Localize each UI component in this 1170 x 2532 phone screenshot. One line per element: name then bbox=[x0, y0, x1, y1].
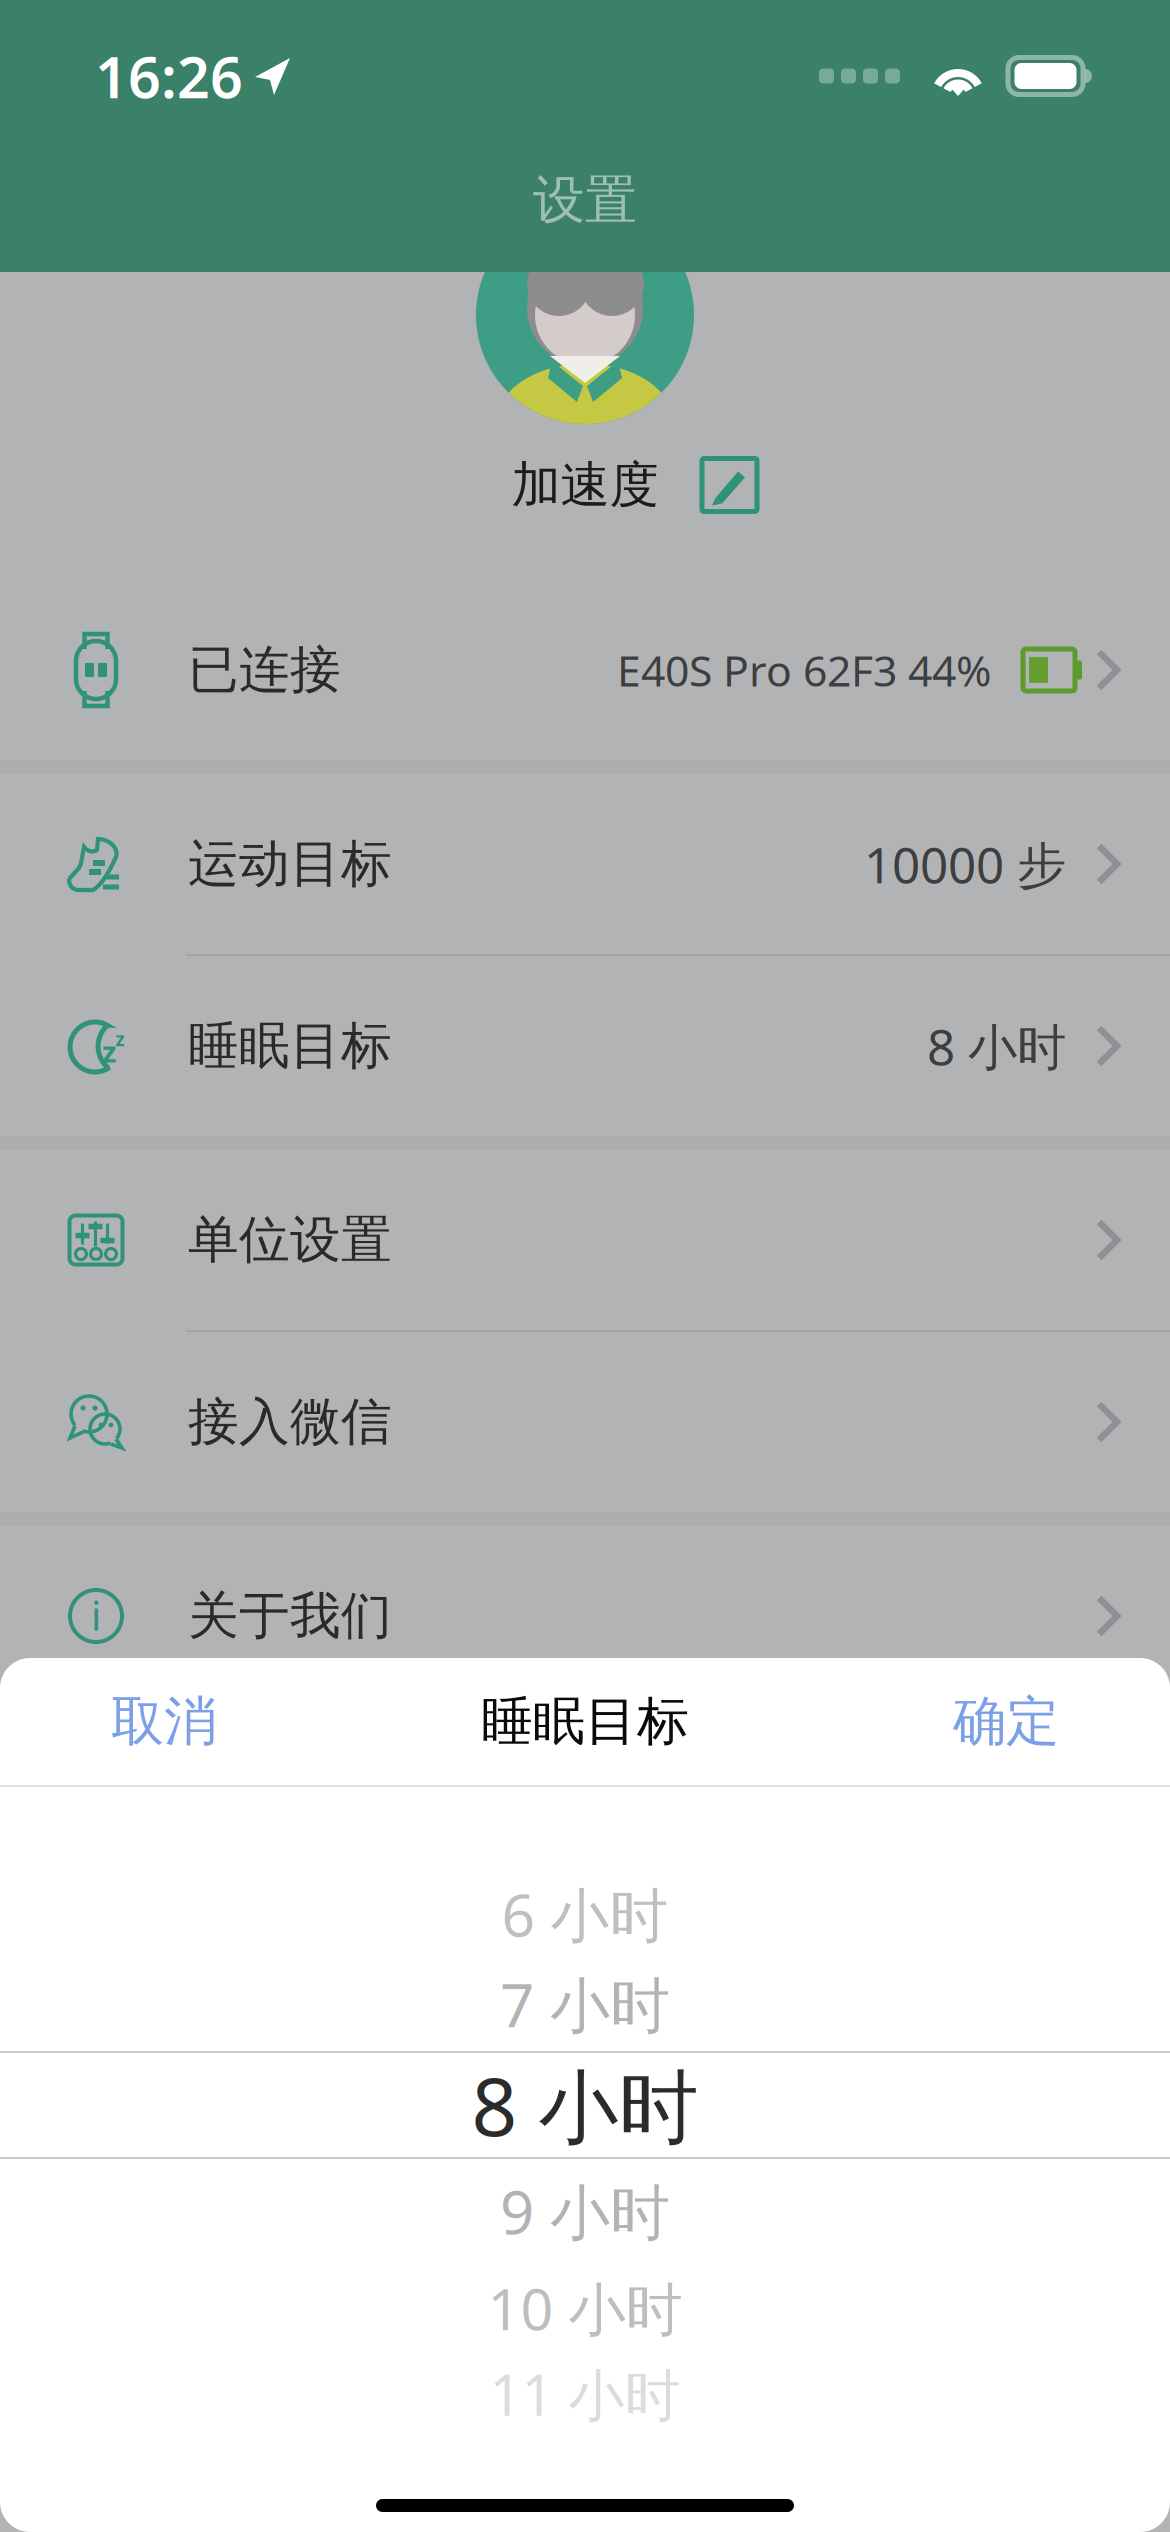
staticText: 已连接 bbox=[188, 639, 341, 701]
staticText: 16:26 bbox=[95, 38, 243, 114]
staticText: 10000 步 bbox=[864, 831, 1066, 897]
staticText: 接入微信 bbox=[188, 1391, 392, 1453]
staticText: 睡眠目标 bbox=[188, 1015, 392, 1077]
staticText: 11 小时 bbox=[489, 2357, 680, 2431]
staticText: 取消 bbox=[111, 1689, 217, 1754]
staticText: 8 小时 bbox=[927, 1013, 1066, 1079]
staticText: 确定 bbox=[953, 1689, 1059, 1754]
staticText: i bbox=[91, 1588, 101, 1641]
button[interactable]: z bbox=[0, 956, 1170, 1136]
button[interactable]: i bbox=[0, 1526, 1170, 1706]
staticText: 关于我们 bbox=[188, 1585, 392, 1647]
staticText: 单位设置 bbox=[188, 1209, 392, 1271]
staticText: 睡眠目标 bbox=[481, 1690, 689, 1753]
button[interactable]: 单位设置 bbox=[0, 1150, 1170, 1330]
button[interactable]: 确定 bbox=[919, 1671, 1093, 1772]
button[interactable]: 取消 bbox=[77, 1671, 251, 1772]
staticText: z bbox=[115, 1027, 124, 1051]
staticText: 运动目标 bbox=[188, 833, 392, 895]
staticText: 7 小时 bbox=[500, 1964, 670, 2044]
staticText: z bbox=[102, 1031, 116, 1070]
button[interactable]: 运动目标 bbox=[0, 774, 1170, 954]
staticText: 10 小时 bbox=[487, 2270, 682, 2346]
staticText: 8 小时 bbox=[471, 2052, 698, 2158]
staticText: 9 小时 bbox=[500, 2171, 670, 2251]
button[interactable]: 编辑 bbox=[702, 458, 757, 511]
button[interactable]: 接入微信 bbox=[0, 1332, 1170, 1512]
staticText: E40S Pro 62F3 44% bbox=[617, 642, 991, 698]
button[interactable]: 已连接 bbox=[0, 580, 1170, 760]
staticText: 设置 bbox=[533, 168, 637, 232]
staticText: 6 小时 bbox=[501, 1875, 668, 1953]
staticText: 加速度 bbox=[511, 455, 658, 515]
